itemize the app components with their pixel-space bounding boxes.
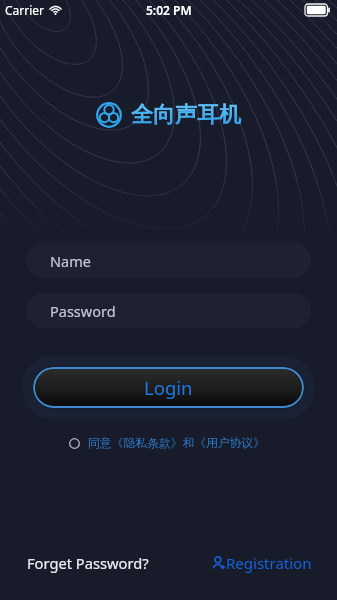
button[interactable]: Agree to terms	[66, 435, 82, 451]
button[interactable]: 同意《隐私条款》和《用户协议》	[88, 436, 265, 451]
staticText: 全向声耳机	[131, 101, 241, 129]
staticText: Password	[50, 301, 116, 321]
staticText: 5:02 PM	[146, 2, 192, 18]
button[interactable]: Password	[26, 293, 311, 328]
staticText: Login	[144, 375, 193, 400]
staticText: Registration	[226, 553, 312, 573]
button[interactable]: Login	[33, 367, 304, 408]
button[interactable]: Registration	[212, 553, 312, 573]
button[interactable]: Forget Password?	[27, 553, 149, 573]
button[interactable]: Name	[26, 243, 311, 278]
staticText: Name	[50, 251, 91, 271]
staticText: Carrier	[5, 2, 45, 18]
